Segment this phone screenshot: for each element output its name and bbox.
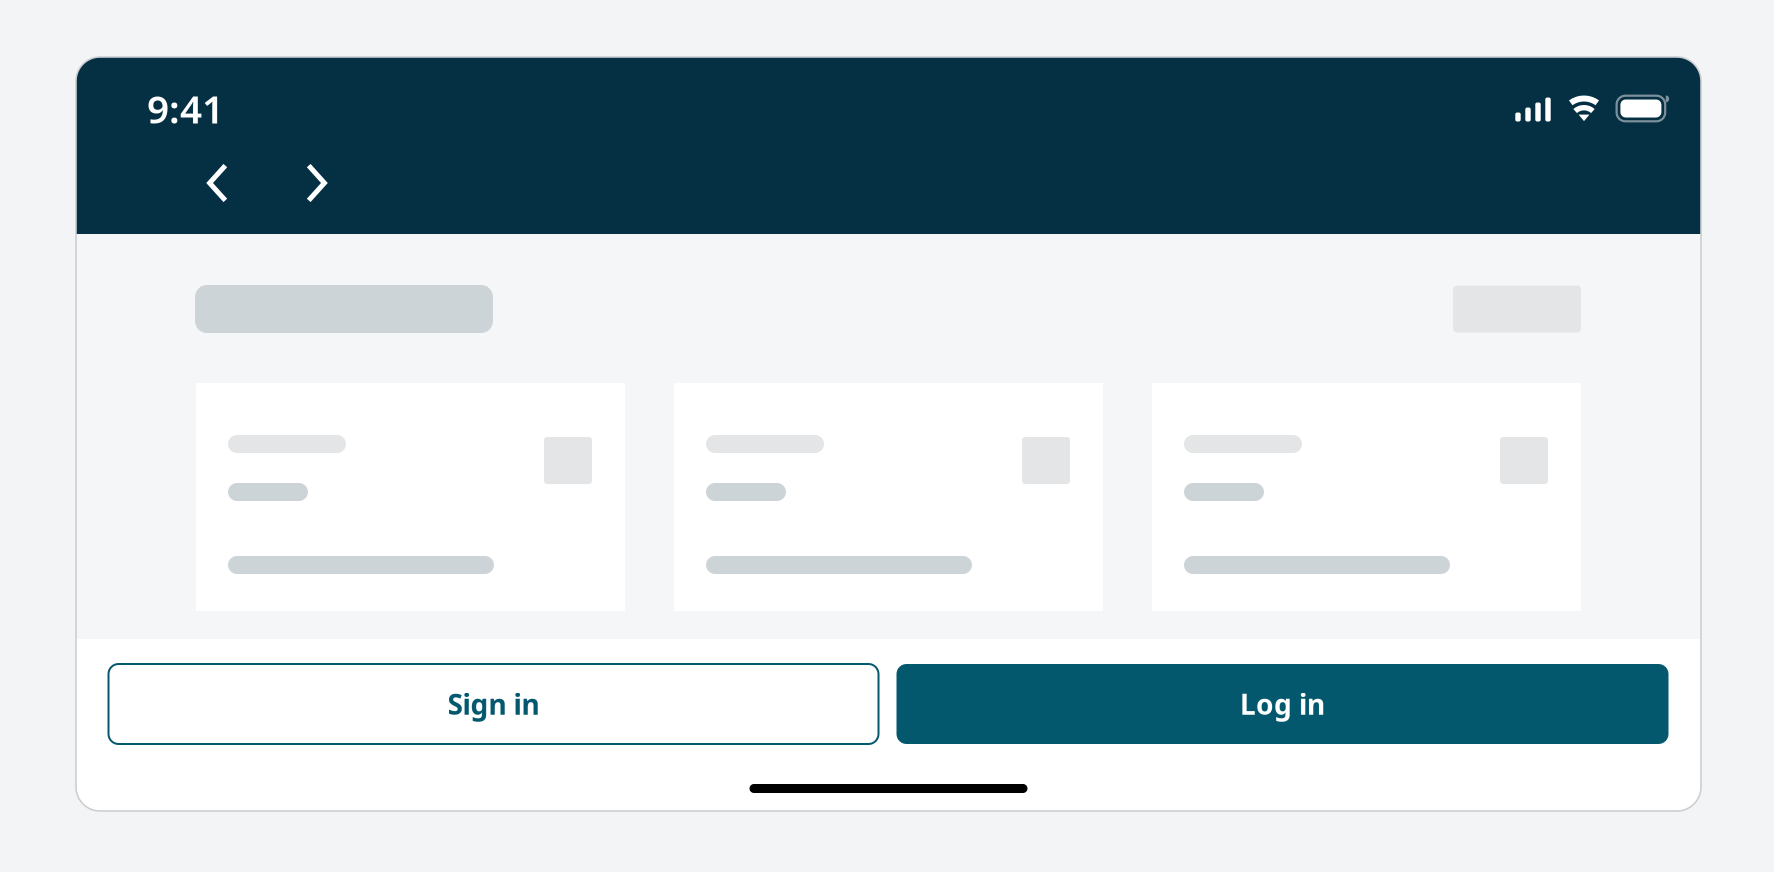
button[interactable]: Back xyxy=(168,152,267,214)
staticText: Sign in xyxy=(447,685,539,723)
staticText: 9:41 xyxy=(147,83,224,134)
button[interactable]: Sign in xyxy=(108,664,878,744)
button[interactable]: Log in xyxy=(896,664,1668,744)
staticText: Log in xyxy=(1240,685,1325,723)
button[interactable]: Forward xyxy=(267,152,366,214)
